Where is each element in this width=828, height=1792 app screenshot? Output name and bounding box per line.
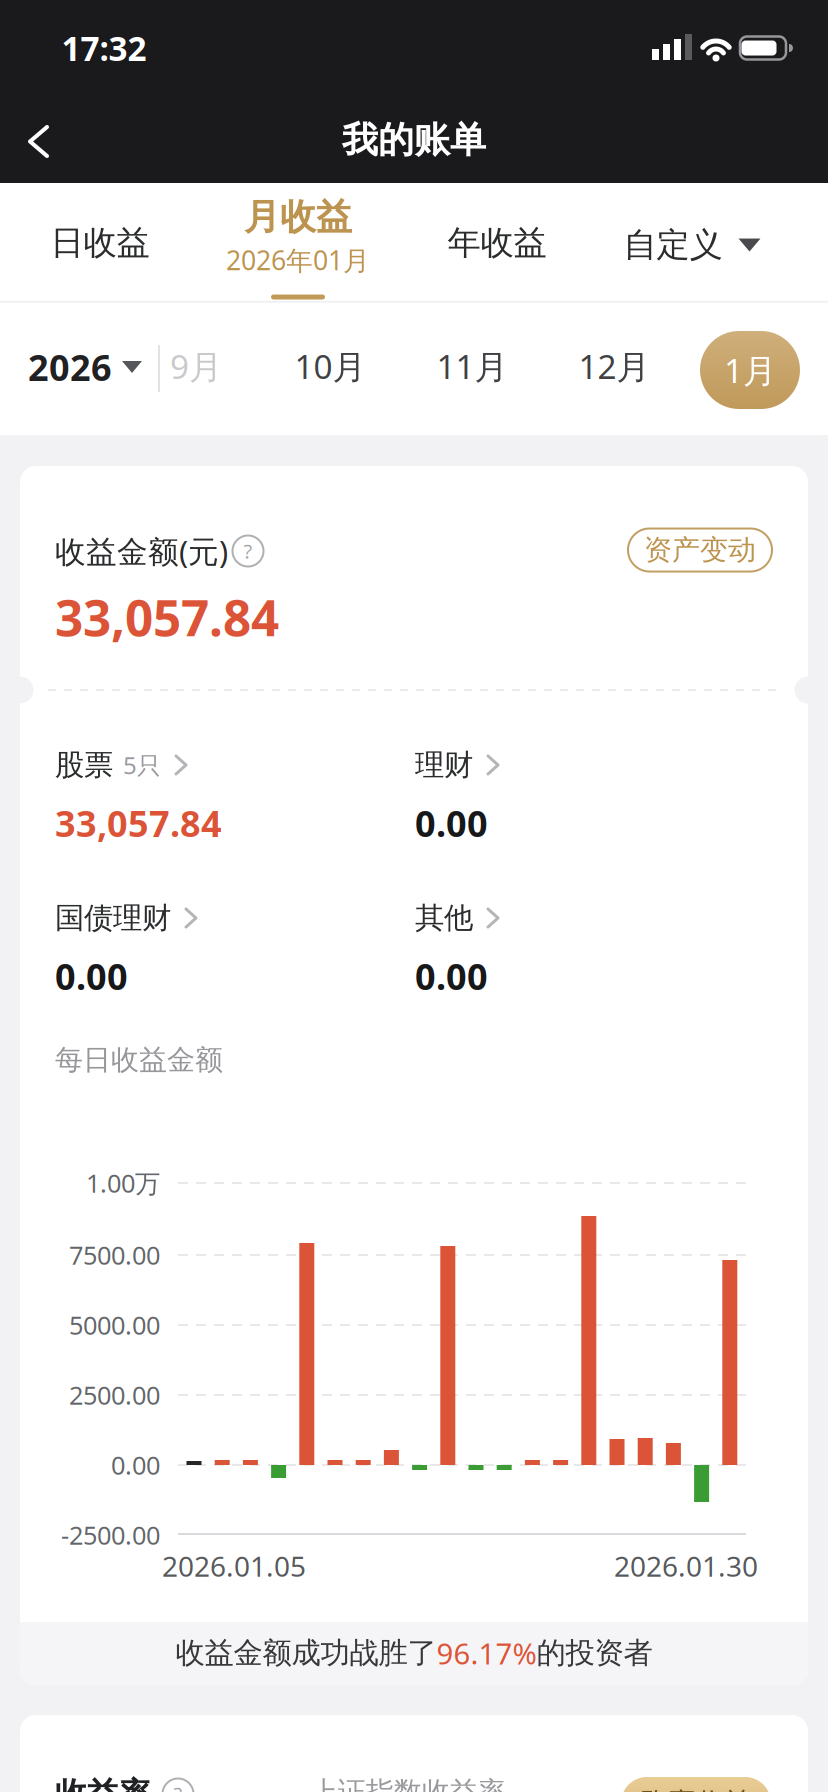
- staticText: ?: [173, 1781, 182, 1792]
- staticText: 9月: [170, 344, 222, 388]
- staticText: 2026: [28, 343, 112, 391]
- staticText: -2500.00: [61, 1518, 160, 1552]
- staticText: 33,057.84: [55, 799, 222, 847]
- staticText: 1月: [724, 348, 776, 392]
- staticText: 上证指数收益率: [310, 1775, 506, 1792]
- staticText: 每日收益金额: [55, 1043, 223, 1077]
- staticText: 日收益: [50, 222, 149, 263]
- staticText: 5000.00: [69, 1308, 160, 1342]
- staticText: 0.00: [415, 799, 488, 847]
- staticText: 自定义: [623, 224, 722, 265]
- staticText: 年收益: [447, 222, 546, 263]
- staticText: 7500.00: [69, 1238, 160, 1272]
- staticText: 33,057.84: [55, 584, 279, 650]
- button[interactable]: 2026: [20, 322, 150, 412]
- button[interactable]: 跑赢收益: [621, 1777, 771, 1792]
- staticText: 1.00万: [86, 1166, 160, 1200]
- staticText: 12月: [578, 344, 649, 388]
- button[interactable]: 收益金额说明: [232, 535, 264, 567]
- staticText: 17:32: [61, 26, 146, 70]
- staticText: 11月: [436, 344, 507, 388]
- staticText: 收益率: [55, 1774, 151, 1792]
- staticText: 0.00: [415, 952, 488, 1000]
- button[interactable]: 1月: [700, 331, 800, 409]
- staticText: 2026.01.30: [614, 1547, 758, 1585]
- button[interactable]: 国债理财: [55, 893, 395, 1003]
- button[interactable]: 其他: [415, 893, 755, 1003]
- staticText: 的投资者: [536, 1635, 652, 1671]
- button[interactable]: 12月: [559, 321, 669, 411]
- button[interactable]: 股票: [55, 740, 395, 850]
- staticText: 0.00: [55, 952, 128, 1000]
- staticText: 2026年01月: [226, 242, 370, 278]
- staticText: 理财: [415, 747, 473, 783]
- staticText: 2500.00: [69, 1378, 160, 1412]
- button[interactable]: 自定义: [602, 190, 782, 300]
- button[interactable]: 资产变动: [628, 528, 772, 571]
- staticText: 国债理财: [55, 900, 171, 936]
- button[interactable]: 理财: [415, 740, 755, 850]
- staticText: 5只: [123, 749, 161, 781]
- button[interactable]: 日收益: [15, 188, 185, 298]
- button[interactable]: 11月: [417, 321, 527, 411]
- staticText: 我的账单: [342, 118, 486, 162]
- button[interactable]: 年收益: [412, 188, 582, 298]
- staticText: ?: [243, 538, 252, 564]
- button[interactable]: 9月: [151, 321, 241, 411]
- button[interactable]: 返回: [10, 118, 74, 162]
- staticText: 月收益: [244, 195, 352, 239]
- button[interactable]: 月收益: [213, 183, 383, 301]
- staticText: 其他: [415, 900, 473, 936]
- staticText: 10月: [294, 344, 365, 388]
- button[interactable]: 10月: [275, 321, 385, 411]
- button[interactable]: 收益率说明: [162, 1778, 194, 1792]
- staticText: 收益金额成功战胜了: [175, 1635, 436, 1671]
- staticText: 跑赢收益: [640, 1786, 752, 1792]
- staticText: 2026.01.05: [162, 1547, 306, 1585]
- staticText: 股票: [55, 747, 113, 783]
- staticText: 96.17%: [436, 1633, 536, 1672]
- staticText: 0.00: [111, 1448, 160, 1482]
- staticText: 收益金额(元): [55, 531, 228, 571]
- staticText: 资产变动: [644, 533, 756, 567]
